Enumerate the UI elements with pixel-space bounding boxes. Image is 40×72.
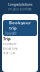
staticText: Upgrade	[5, 32, 17, 35]
staticText: Book your trip	[9, 20, 31, 31]
staticText: Arrival time	[3, 47, 18, 50]
staticText: Seat 12A	[3, 51, 15, 55]
staticText: Congratulations	[8, 3, 32, 6]
staticText: Departure	[3, 42, 17, 46]
staticText: on your purchase	[8, 7, 32, 11]
staticText: Trip	[3, 36, 11, 41]
